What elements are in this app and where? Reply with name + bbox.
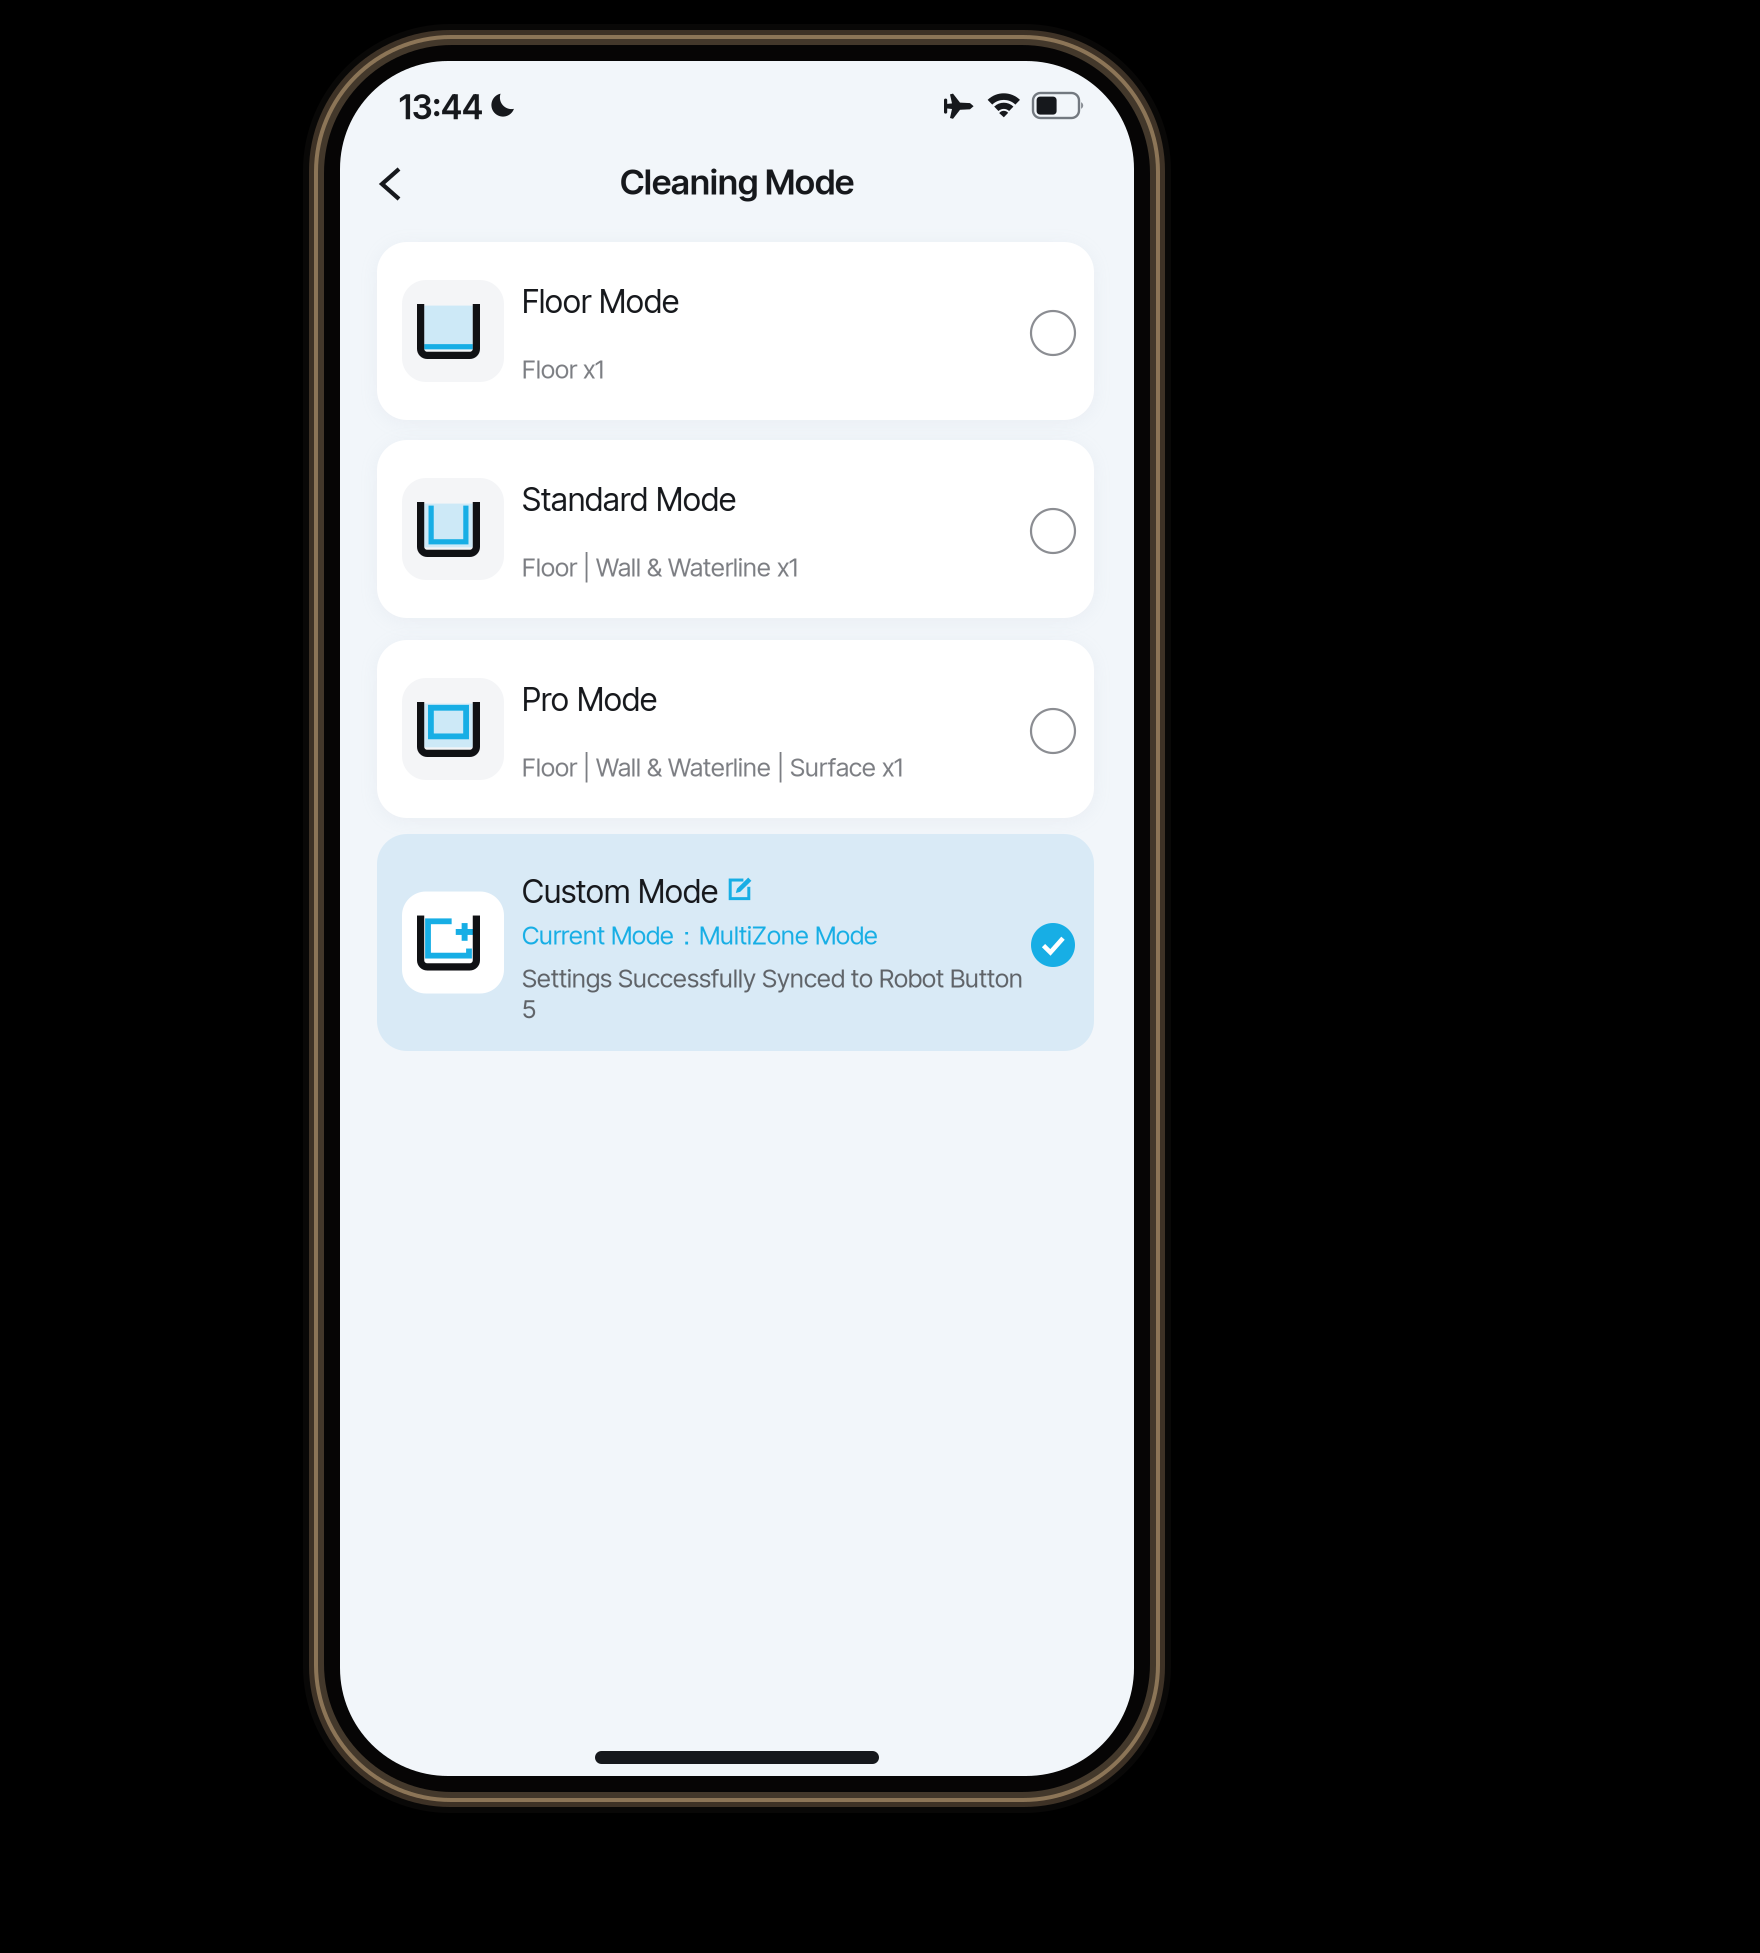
button[interactable]: Floor Mode [377,242,1094,420]
staticText: Settings Successfully Synced to Robot Bu… [522,963,1023,1024]
button[interactable]: Back [362,149,419,219]
staticText: Custom Mode [522,872,718,911]
staticText: Cleaning Mode [620,161,854,203]
staticText: 13:44 [399,87,483,127]
staticText: Current Mode：MultiZone Mode [522,920,878,952]
staticText: Floor Mode [522,282,679,321]
button[interactable]: Custom Mode [377,834,1094,1051]
button[interactable]: Pro Mode [377,640,1094,818]
button[interactable]: Standard Mode [377,440,1094,618]
staticText: Standard Mode [522,480,736,519]
staticText: Floor | Wall & Waterline | Surface x1 [522,752,903,783]
staticText: Floor x1 [522,354,604,385]
staticText: Floor | Wall & Waterline x1 [522,552,798,583]
staticText: Pro Mode [522,680,657,719]
